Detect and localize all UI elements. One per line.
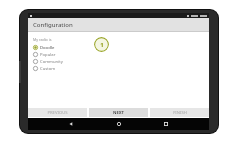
button[interactable]: Popular xyxy=(33,51,85,58)
staticText: Community xyxy=(40,59,63,65)
staticText: Configuration xyxy=(33,21,73,29)
staticText: FINISH xyxy=(173,110,187,116)
button[interactable]: Recent apps xyxy=(161,119,171,129)
staticText: Doodle xyxy=(40,45,55,51)
staticText: NEXT xyxy=(113,110,124,116)
button[interactable]: Step 1 xyxy=(94,37,109,52)
button[interactable]: Home xyxy=(114,119,124,129)
button[interactable]: FINISH xyxy=(150,108,209,117)
staticText: My radio is xyxy=(33,37,52,42)
button[interactable]: Community xyxy=(33,58,85,65)
button[interactable]: NEXT xyxy=(89,108,148,117)
staticText: Popular xyxy=(40,52,56,58)
staticText: Custom xyxy=(40,66,56,72)
button[interactable]: Custom xyxy=(33,65,85,72)
button[interactable]: Back xyxy=(66,119,76,129)
button[interactable]: Doodle xyxy=(33,44,85,51)
staticText: 1 xyxy=(100,41,104,49)
button[interactable]: PREVIOUS xyxy=(28,108,87,117)
staticText: PREVIOUS xyxy=(47,110,68,116)
